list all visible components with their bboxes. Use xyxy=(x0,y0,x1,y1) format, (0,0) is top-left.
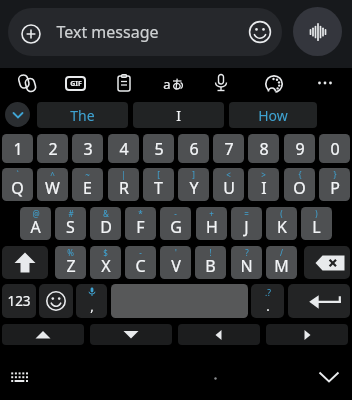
button[interactable]: 2 xyxy=(37,134,68,163)
button[interactable] xyxy=(310,68,340,98)
button[interactable]: ^ xyxy=(37,168,68,201)
button[interactable]: - xyxy=(160,207,191,240)
button[interactable] xyxy=(314,366,344,388)
staticText: ^ xyxy=(50,169,55,180)
button[interactable] xyxy=(12,68,42,98)
button[interactable]: 6 xyxy=(178,134,209,163)
button[interactable] xyxy=(266,324,348,345)
button[interactable] xyxy=(258,68,289,99)
button[interactable]: - xyxy=(125,246,156,279)
button[interactable]: / xyxy=(266,246,297,279)
button[interactable]: ' xyxy=(160,246,191,279)
button[interactable]: 4 xyxy=(108,134,139,163)
button[interactable]: a xyxy=(157,68,188,99)
staticText: , xyxy=(90,297,94,315)
staticText: 8 xyxy=(259,138,269,160)
staticText: ! xyxy=(209,247,212,258)
staticText: ? xyxy=(245,247,249,258)
button[interactable]: 8 xyxy=(248,134,279,163)
button[interactable]: + xyxy=(196,207,227,240)
button[interactable]: ] xyxy=(178,168,209,201)
button[interactable]: < xyxy=(213,168,244,201)
staticText: ~ xyxy=(85,169,90,180)
staticText: Text message xyxy=(56,21,159,43)
button[interactable] xyxy=(109,68,139,98)
staticText: G xyxy=(170,216,182,238)
staticText: & xyxy=(103,208,109,219)
button[interactable]: & xyxy=(90,207,121,240)
button[interactable] xyxy=(206,68,236,98)
staticText: = xyxy=(244,208,249,219)
button[interactable]: = xyxy=(231,207,262,240)
staticText: P xyxy=(330,177,340,199)
button[interactable]: 3 xyxy=(72,134,103,163)
button[interactable]: ! xyxy=(195,246,226,279)
staticText: B xyxy=(205,255,216,277)
button[interactable] xyxy=(293,7,342,56)
button[interactable]: How xyxy=(229,102,317,128)
button[interactable]: ? xyxy=(231,246,262,279)
button[interactable]: [ xyxy=(143,168,174,201)
button[interactable]: ~ xyxy=(72,168,103,201)
staticText: U xyxy=(223,177,235,199)
button[interactable] xyxy=(178,324,260,345)
button[interactable]: # xyxy=(55,207,86,240)
staticText: - xyxy=(174,208,177,219)
button[interactable]: Text message xyxy=(8,8,282,56)
staticText: X xyxy=(101,255,111,277)
button[interactable] xyxy=(6,367,32,387)
button[interactable]: 9 xyxy=(284,134,315,163)
staticText: 3 xyxy=(83,138,93,160)
staticText: % xyxy=(67,247,74,258)
button[interactable]: % xyxy=(55,246,86,279)
button[interactable]: 0 xyxy=(319,134,350,163)
button[interactable] xyxy=(5,102,30,127)
button[interactable]: .? xyxy=(251,284,284,318)
button[interactable] xyxy=(90,324,172,345)
staticText: ] xyxy=(192,169,195,180)
button[interactable] xyxy=(39,284,73,318)
button[interactable]: 5 xyxy=(143,134,174,163)
staticText: # xyxy=(68,208,74,219)
staticText: * xyxy=(138,208,143,219)
staticText: { xyxy=(298,169,302,180)
staticText: F xyxy=(136,216,145,238)
button[interactable] xyxy=(2,324,84,345)
staticText: ) xyxy=(315,208,318,219)
button[interactable] xyxy=(304,246,350,279)
button[interactable] xyxy=(2,246,48,279)
button[interactable] xyxy=(111,284,248,318)
staticText: | xyxy=(121,169,126,180)
staticText: 0 xyxy=(330,138,340,160)
button[interactable]: > xyxy=(248,168,279,201)
staticText: The xyxy=(70,106,95,125)
staticText: ` xyxy=(16,169,19,180)
button[interactable]: 7 xyxy=(213,134,244,163)
staticText: K xyxy=(277,216,287,238)
button[interactable]: * xyxy=(125,207,156,240)
staticText: } xyxy=(333,169,337,180)
button[interactable]: $ xyxy=(90,246,121,279)
button[interactable]: I xyxy=(133,102,224,128)
button[interactable]: The xyxy=(37,102,128,128)
staticText: 123 xyxy=(7,292,31,310)
button[interactable]: { xyxy=(284,168,315,201)
button[interactable] xyxy=(288,284,350,318)
button[interactable]: | xyxy=(108,168,139,201)
button[interactable]: } xyxy=(319,168,350,201)
staticText: M xyxy=(274,255,289,277)
button[interactable]: ) xyxy=(301,207,332,240)
button[interactable]: ` xyxy=(2,168,33,201)
button[interactable]: @ xyxy=(20,207,51,240)
staticText: 6 xyxy=(189,138,199,160)
button[interactable]: , xyxy=(76,284,107,318)
staticText: + xyxy=(209,208,214,219)
staticText: S xyxy=(66,216,75,238)
button[interactable]: 1 xyxy=(2,134,33,163)
button[interactable]: GIF xyxy=(60,68,91,99)
staticText: 9 xyxy=(295,138,305,160)
staticText: GIF xyxy=(70,79,82,89)
button[interactable]: 123 xyxy=(2,284,36,318)
button[interactable]: ( xyxy=(266,207,297,240)
staticText: / xyxy=(280,247,283,258)
